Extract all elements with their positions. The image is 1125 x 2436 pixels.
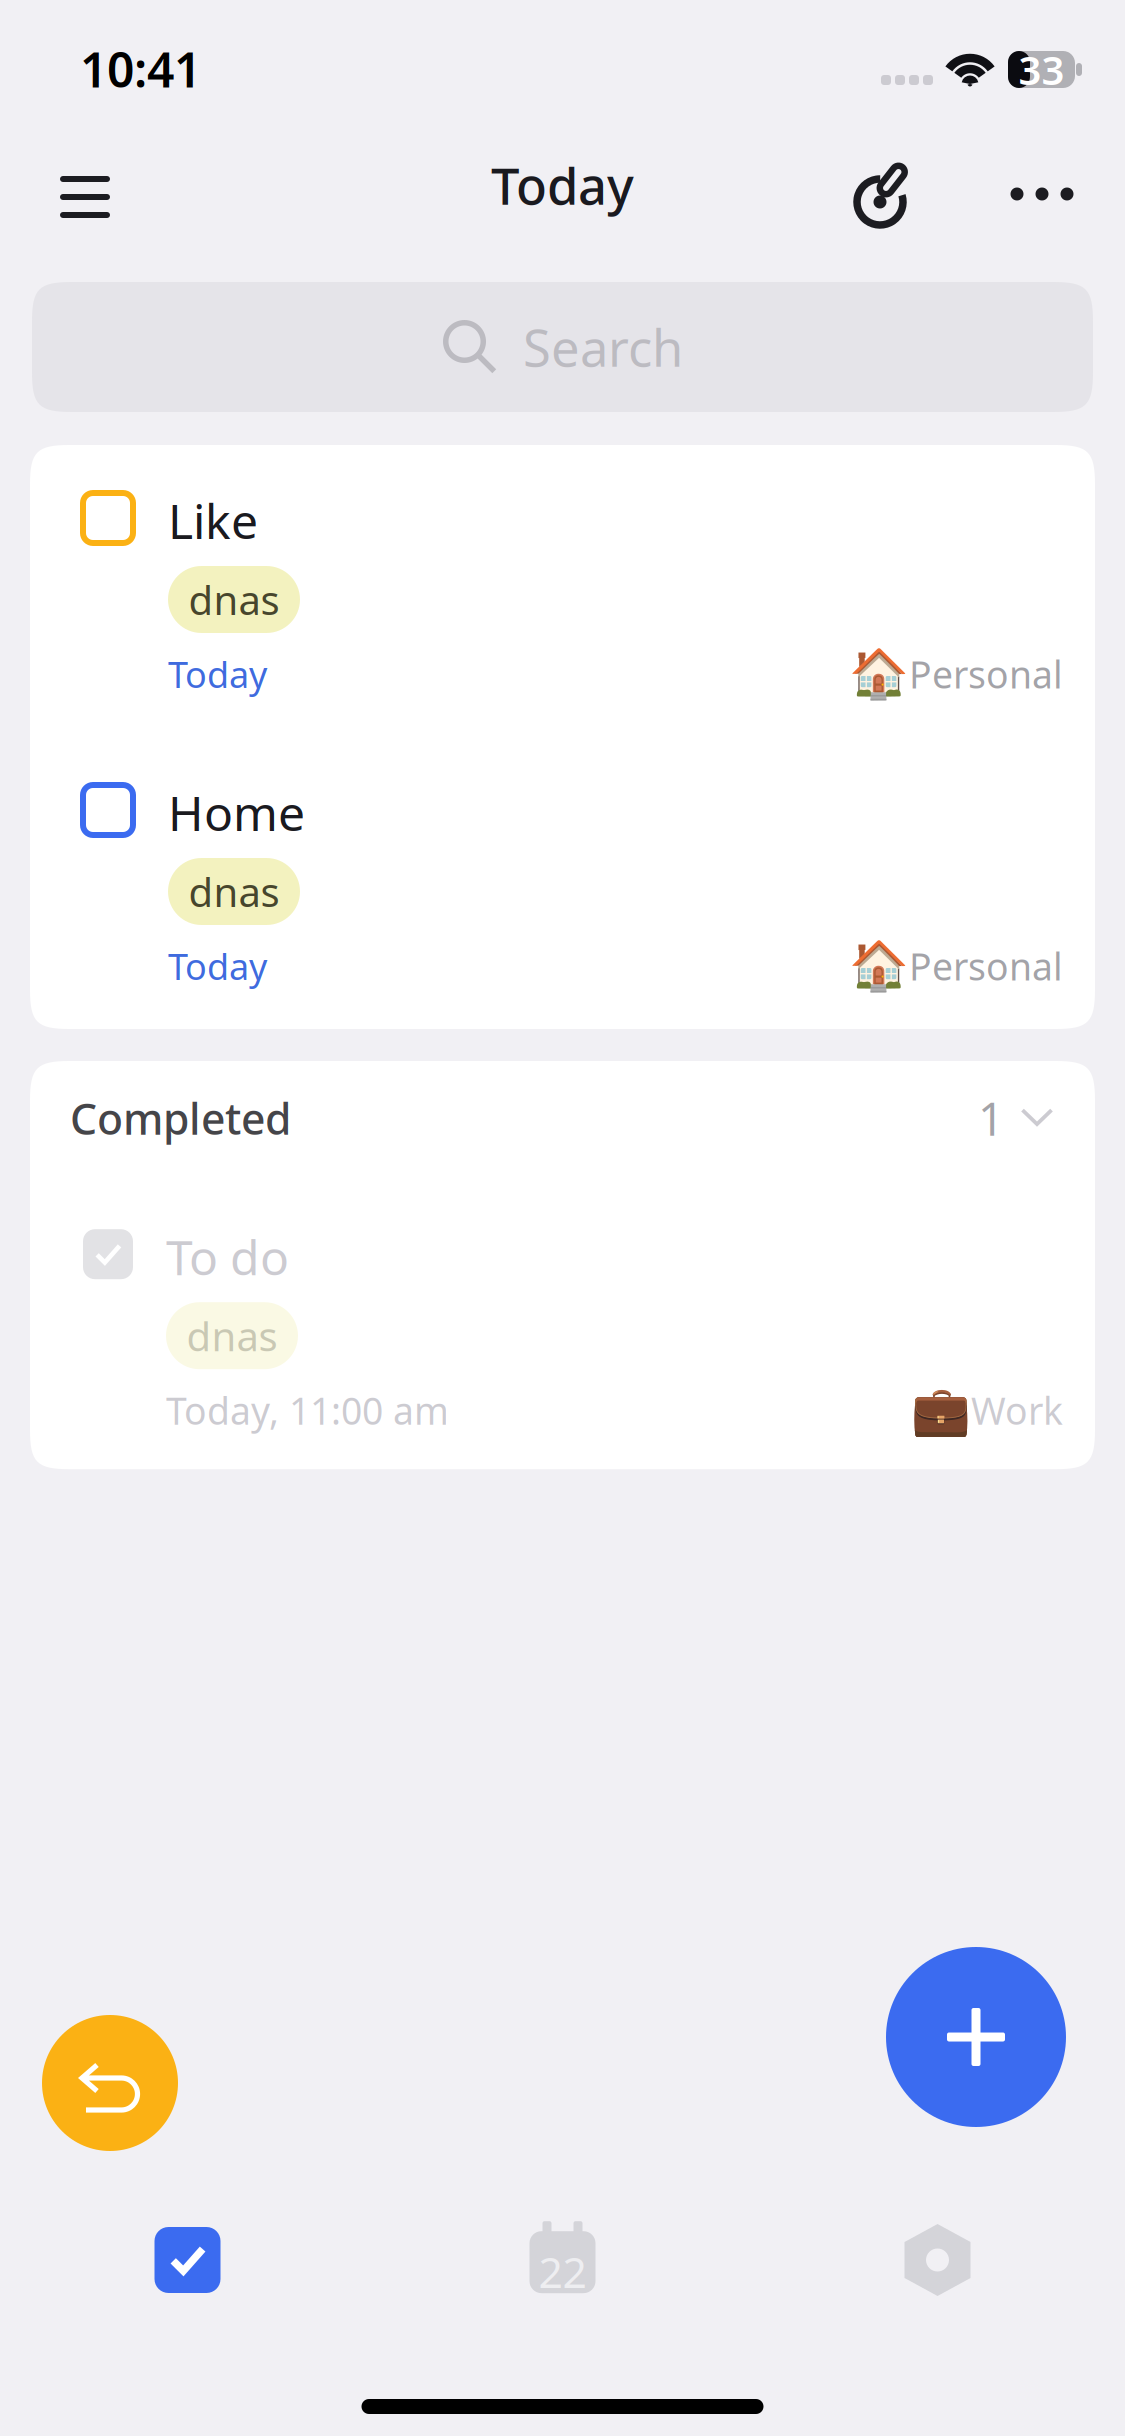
button[interactable]: Focus timer	[838, 139, 930, 249]
button[interactable]: More options	[997, 139, 1087, 249]
button[interactable]: Home	[30, 737, 1095, 1029]
staticText: dnas	[186, 1309, 277, 1362]
staticText: Work	[971, 1385, 1063, 1435]
staticText: dnas	[188, 573, 279, 626]
staticText: 1	[978, 1088, 1004, 1148]
button[interactable]: Calendar	[375, 2205, 750, 2315]
button[interactable]: To do	[30, 1173, 1095, 1469]
button[interactable]: Undo	[42, 2015, 178, 2151]
button[interactable]: Like	[30, 445, 1095, 737]
staticText: Like	[168, 489, 258, 552]
button[interactable]: Menu	[33, 136, 137, 252]
staticText: Completed	[70, 1090, 291, 1146]
staticText: Today	[168, 650, 267, 698]
staticText: 33	[1018, 43, 1064, 96]
button[interactable]: Search	[32, 282, 1093, 412]
staticText: 🏠	[849, 647, 909, 701]
staticText: dnas	[188, 865, 279, 918]
staticText: Personal	[909, 649, 1063, 699]
button[interactable]: Settings	[750, 2205, 1125, 2315]
staticText: Today	[491, 151, 634, 219]
button[interactable]: Tasks	[0, 2205, 375, 2315]
staticText: Home	[168, 781, 305, 844]
button[interactable]: Add task	[886, 1947, 1066, 2151]
staticText: To do	[166, 1225, 289, 1288]
button[interactable]: Completed	[30, 1061, 1095, 1173]
staticText: Today, 11:00 am	[166, 1385, 449, 1435]
staticText: 10:41	[80, 37, 201, 101]
staticText: 22	[538, 2243, 586, 2300]
staticText: 💼	[911, 1383, 971, 1438]
staticText: Personal	[909, 941, 1063, 991]
staticText: Search	[523, 313, 683, 381]
staticText: 🏠	[849, 939, 909, 993]
staticText: Today	[168, 942, 267, 990]
